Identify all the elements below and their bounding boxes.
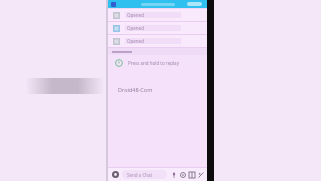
button[interactable]: Emoji	[178, 170, 187, 179]
staticText: Opened	[127, 38, 144, 44]
button[interactable]: Gallery	[187, 170, 196, 179]
button[interactable]: Stickers	[196, 170, 205, 179]
button[interactable]: New chat	[187, 2, 202, 6]
button[interactable]: Opened	[108, 9, 207, 21]
staticText: Opened	[127, 12, 144, 18]
button[interactable]: Profile	[111, 2, 116, 7]
staticText: Press and hold to replay	[128, 60, 179, 66]
button[interactable]: Press and hold to replay	[111, 56, 204, 69]
staticText: Opened	[127, 25, 144, 31]
staticText: Droid48-Com	[118, 86, 153, 93]
button[interactable]: Settings	[111, 170, 120, 179]
button[interactable]: Opened	[108, 35, 207, 47]
button[interactable]: Opened	[108, 22, 207, 34]
button[interactable]: Voice message	[169, 170, 178, 179]
button[interactable]: Send a Chat	[122, 170, 167, 179]
staticText: Send a Chat	[127, 172, 153, 178]
